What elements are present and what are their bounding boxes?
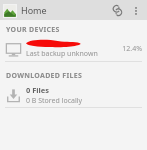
button[interactable]: Last backup unknown <box>0 37 147 61</box>
staticText: 0 B Stored locally <box>26 96 83 106</box>
button[interactable]: More options <box>127 1 145 19</box>
staticText: Home <box>21 4 47 16</box>
button[interactable]: Refresh <box>107 0 127 20</box>
staticText: Last backup unknown <box>26 49 98 59</box>
button[interactable]: App icon <box>2 3 17 18</box>
button[interactable]: 0 Files <box>0 83 147 107</box>
staticText: YOUR DEVICES <box>6 25 60 35</box>
staticText: DOWNLOADED FILES <box>6 71 83 81</box>
staticText: 0 Files <box>26 85 50 95</box>
staticText: 12.4% <box>122 44 142 54</box>
